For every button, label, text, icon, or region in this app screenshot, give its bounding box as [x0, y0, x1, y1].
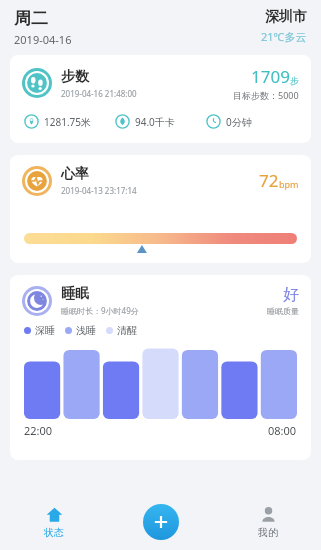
staticText: 周二	[14, 8, 48, 29]
staticText: 94.0千卡	[135, 115, 175, 129]
staticText: 睡眠	[61, 285, 89, 303]
staticText: 1281.75米	[44, 115, 91, 129]
staticText: 步	[290, 75, 299, 86]
staticText: 72	[259, 169, 279, 192]
staticText: 08:00	[268, 423, 297, 438]
staticText: 我的	[258, 526, 278, 539]
staticText: 21℃多云	[261, 29, 307, 44]
button[interactable]: 状态	[22, 502, 86, 543]
staticText: 2019-04-16 21:48:00	[61, 88, 137, 99]
button[interactable]: Add	[143, 504, 179, 540]
staticText: 目标步数：5000	[233, 89, 299, 101]
staticText: 2019-04-16	[14, 32, 72, 47]
staticText: 1709	[251, 65, 290, 88]
staticText: 步数	[61, 68, 89, 86]
staticText: 浅睡	[76, 324, 96, 337]
staticText: 状态	[44, 526, 64, 539]
button[interactable]: 步数	[10, 55, 311, 143]
button[interactable]: 心率	[10, 155, 311, 263]
staticText: 睡眠时长：9小时49分	[61, 305, 139, 316]
button[interactable]: 睡眠	[10, 275, 311, 460]
staticText: 深圳市	[265, 8, 307, 26]
staticText: 2019-04-13 23:17:14	[61, 185, 137, 196]
staticText: 0分钟	[226, 115, 252, 129]
staticText: bpm	[279, 178, 299, 190]
staticText: 深睡	[35, 324, 55, 337]
staticText: 22:00	[24, 423, 53, 438]
staticText: 心率	[61, 165, 89, 183]
button[interactable]: 我的	[236, 502, 300, 543]
staticText: 好	[283, 285, 299, 305]
staticText: 睡眠质量	[267, 306, 299, 316]
staticText: 清醒	[117, 324, 137, 337]
